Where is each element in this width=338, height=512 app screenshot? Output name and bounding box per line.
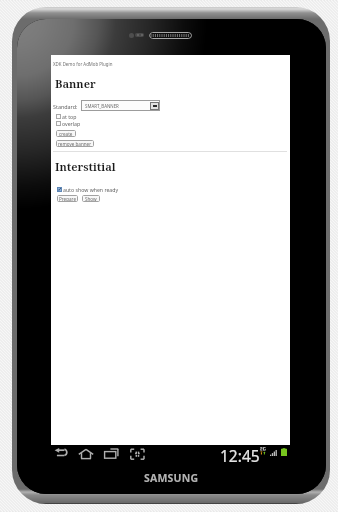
button[interactable]: Prepare — [57, 195, 78, 202]
button[interactable]: create — [56, 130, 76, 137]
staticText: XDK Demo for AdMob Plugin — [53, 61, 113, 67]
staticText: auto show when ready — [63, 186, 119, 193]
other: 3G data — [260, 447, 266, 458]
staticText: Show — [85, 196, 97, 202]
button[interactable]: Back — [54, 447, 70, 463]
staticText: SMART_BANNER — [85, 103, 119, 109]
staticText: Interstitial — [55, 159, 116, 174]
button[interactable]: SMART_BANNER — [81, 100, 160, 111]
other: Signal strength — [270, 450, 278, 456]
button[interactable]: auto show when ready — [57, 186, 119, 193]
button[interactable]: Recent apps — [104, 447, 120, 463]
staticText: Standard: — [53, 103, 78, 110]
other: Battery — [281, 448, 287, 456]
staticText: SAMSUNG — [144, 471, 199, 485]
button[interactable]: at top — [56, 113, 77, 120]
staticText: remove banner — [58, 141, 92, 147]
staticText: at top — [62, 113, 77, 120]
staticText: create — [59, 131, 73, 137]
button[interactable]: Home — [78, 447, 95, 463]
staticText: 12:45 — [220, 445, 260, 464]
button[interactable]: Show — [82, 195, 100, 202]
button[interactable]: overlap — [56, 120, 81, 127]
button[interactable]: Screenshot — [130, 447, 146, 463]
button[interactable]: remove banner — [56, 140, 94, 147]
staticText: Banner — [55, 76, 96, 91]
staticText: Prepare — [59, 196, 76, 202]
staticText: overlap — [62, 120, 81, 127]
